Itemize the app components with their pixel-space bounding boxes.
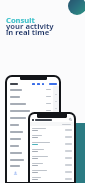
button[interactable]: [32, 140, 72, 147]
button[interactable]: [10, 93, 51, 100]
button[interactable]: Profile: [13, 171, 18, 176]
button[interactable]: [32, 147, 72, 154]
button[interactable]: [49, 83, 57, 85]
button[interactable]: [10, 128, 51, 135]
button[interactable]: [10, 142, 51, 149]
button[interactable]: [32, 161, 72, 168]
button[interactable]: [10, 163, 51, 169]
staticText: Consult your activity in real time: [6, 15, 54, 37]
button[interactable]: [37, 83, 40, 85]
button[interactable]: Search: [69, 118, 72, 121]
button[interactable]: [32, 168, 72, 175]
button[interactable]: [10, 149, 51, 156]
button[interactable]: [10, 114, 51, 121]
button[interactable]: [32, 126, 72, 133]
button[interactable]: [10, 135, 51, 142]
button[interactable]: [42, 83, 44, 85]
button[interactable]: [32, 154, 72, 161]
button[interactable]: [10, 86, 51, 93]
button[interactable]: [32, 133, 72, 140]
button[interactable]: [32, 175, 72, 182]
button[interactable]: [10, 121, 51, 128]
button[interactable]: [10, 156, 51, 163]
button[interactable]: [32, 83, 35, 85]
button[interactable]: [10, 107, 51, 114]
button[interactable]: [10, 100, 51, 107]
